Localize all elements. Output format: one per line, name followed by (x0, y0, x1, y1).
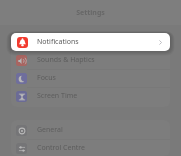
staticText: General (37, 125, 63, 135)
button[interactable]: Notifications (11, 33, 170, 51)
button[interactable]: Screen Time (11, 87, 170, 105)
staticText: Notifications (37, 37, 79, 47)
button[interactable]: General (11, 121, 170, 139)
staticText: Focus (37, 73, 56, 83)
button[interactable]: Control Centre (11, 139, 170, 156)
button[interactable]: Focus (11, 69, 170, 87)
staticText: Sounds & Haptics (37, 55, 95, 65)
button[interactable]: Sounds & Haptics (11, 51, 170, 69)
staticText: Settings (0, 8, 181, 18)
other: Open Notifications (158, 40, 163, 45)
staticText: Control Centre (37, 143, 86, 153)
staticText: Screen Time (37, 91, 78, 101)
